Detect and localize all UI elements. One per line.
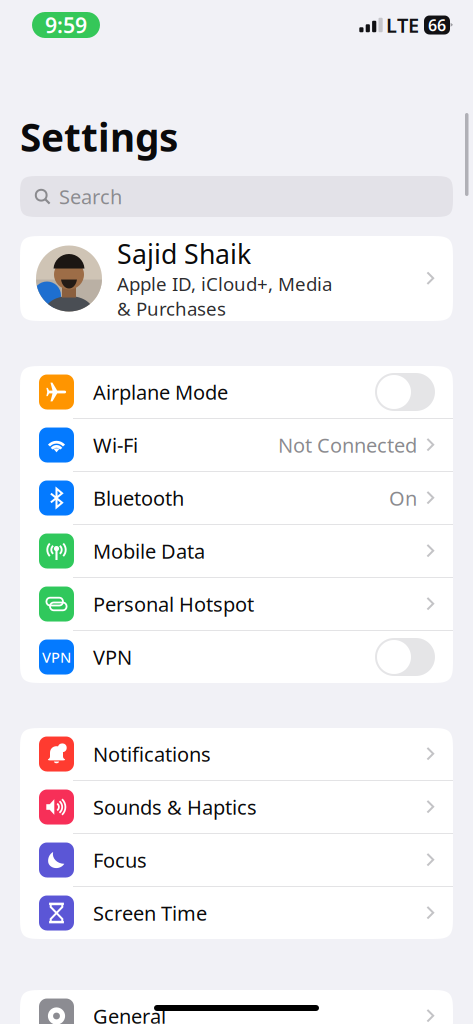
button[interactable]: Personal Hotspot bbox=[20, 578, 453, 630]
staticText: 9:59 bbox=[45, 11, 87, 39]
staticText: Focus bbox=[93, 847, 147, 873]
button[interactable]: Airplane Mode bbox=[20, 366, 453, 418]
staticText: Screen Time bbox=[93, 900, 207, 926]
button[interactable]: Wi-Fi bbox=[20, 419, 453, 471]
staticText: Airplane Mode bbox=[93, 379, 228, 405]
button[interactable]: Search bbox=[20, 176, 453, 217]
staticText: & Purchases bbox=[117, 296, 226, 321]
button[interactable]: Focus bbox=[20, 834, 453, 886]
staticText: Personal Hotspot bbox=[93, 591, 254, 617]
staticText: Search bbox=[59, 183, 122, 210]
staticText: Mobile Data bbox=[93, 538, 205, 564]
button[interactable]: General bbox=[20, 990, 453, 1024]
staticText: General bbox=[93, 1003, 166, 1024]
button[interactable]: VPN bbox=[20, 631, 453, 683]
button[interactable]: Mobile Data bbox=[20, 525, 453, 577]
staticText: Wi-Fi bbox=[93, 432, 138, 458]
staticText: VPN bbox=[93, 644, 132, 670]
staticText: 66 bbox=[428, 14, 446, 36]
staticText: Sajid Shaik bbox=[117, 236, 251, 271]
button[interactable]: Bluetooth bbox=[20, 472, 453, 524]
staticText: Settings bbox=[20, 111, 178, 162]
staticText: Sounds & Haptics bbox=[93, 794, 257, 820]
button[interactable]: Notifications bbox=[20, 728, 453, 780]
staticText: VPN bbox=[42, 647, 71, 667]
button[interactable]: Sounds & Haptics bbox=[20, 781, 453, 833]
staticText: On bbox=[389, 485, 417, 511]
button[interactable]: Screen Time bbox=[20, 887, 453, 939]
staticText: Notifications bbox=[93, 741, 211, 767]
button[interactable]: Sajid Shaik bbox=[20, 236, 453, 321]
staticText: Not Connected bbox=[278, 432, 417, 458]
staticText: Bluetooth bbox=[93, 485, 184, 511]
staticText: LTE bbox=[386, 12, 419, 38]
staticText: Apple ID, iCloud+, Media bbox=[117, 271, 332, 296]
